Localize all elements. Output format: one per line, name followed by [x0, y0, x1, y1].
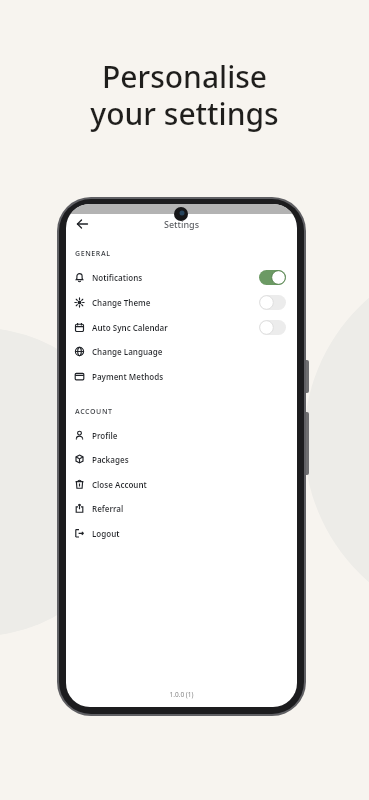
staticText: Profile	[92, 430, 118, 441]
button[interactable]	[259, 295, 286, 310]
button[interactable]: Close Account	[74, 474, 286, 494]
button[interactable]: Logout	[74, 523, 286, 543]
staticText: ACCOUNT	[75, 407, 113, 417]
staticText: 1.0.0 (1)	[66, 690, 297, 699]
staticText: Packages	[92, 454, 129, 465]
staticText: Referral	[92, 503, 124, 514]
staticText: Close Account	[92, 479, 147, 490]
button[interactable]: Packages	[74, 449, 286, 469]
button[interactable]: Auto Sync Calendar	[74, 317, 286, 337]
staticText: Change Language	[92, 346, 163, 357]
button[interactable]: Payment Methods	[74, 366, 286, 386]
button[interactable]	[259, 320, 286, 335]
staticText: Payment Methods	[92, 371, 164, 382]
staticText: Change Theme	[92, 297, 151, 308]
staticText: GENERAL	[75, 249, 111, 259]
button[interactable]	[74, 216, 92, 232]
button[interactable]	[259, 270, 286, 285]
staticText: Personalise	[0, 56, 369, 97]
staticText: your settings	[0, 93, 369, 134]
button[interactable]: Change Theme	[74, 292, 286, 312]
button[interactable]: Profile	[74, 425, 286, 445]
staticText: Logout	[92, 528, 120, 539]
staticText: Settings	[66, 218, 297, 230]
staticText: Notifications	[92, 272, 143, 283]
button[interactable]: Notifications	[74, 267, 286, 287]
staticText: Auto Sync Calendar	[92, 322, 168, 333]
button[interactable]: Change Language	[74, 341, 286, 361]
button[interactable]: Referral	[74, 498, 286, 518]
